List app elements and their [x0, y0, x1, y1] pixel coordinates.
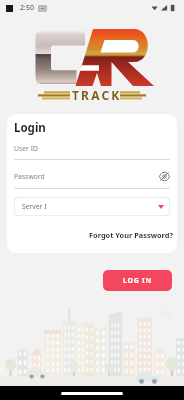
button[interactable]: Password — [14, 171, 170, 189]
button[interactable]: User ID — [14, 144, 170, 160]
staticText: Forgot Your Password? — [89, 230, 173, 240]
staticText: LOG IN — [123, 276, 152, 286]
staticText: Server I — [22, 202, 47, 211]
button[interactable]: LOG IN — [103, 270, 172, 291]
staticText: User ID — [14, 144, 38, 153]
other: Show password — [159, 171, 170, 182]
staticText: Login — [14, 120, 46, 136]
button[interactable]: Forgot Your Password? — [88, 229, 174, 241]
staticText: Password — [14, 172, 45, 181]
staticText: TRACK — [72, 87, 122, 103]
staticText: 2:50 — [20, 3, 34, 13]
button[interactable]: Server I — [14, 197, 170, 216]
